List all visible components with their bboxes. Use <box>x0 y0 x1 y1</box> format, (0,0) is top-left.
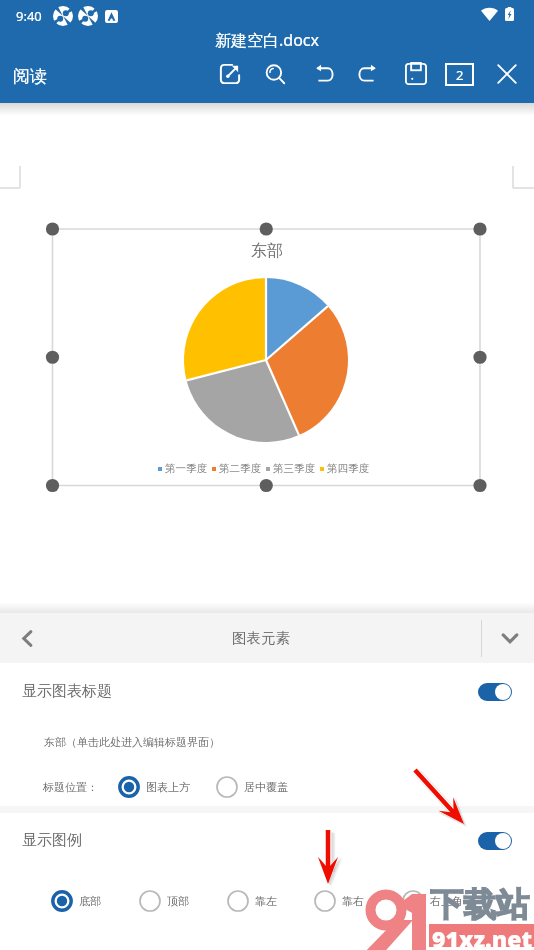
staticText: 底部 <box>79 894 101 908</box>
staticText: 东部 <box>251 241 283 261</box>
button[interactable]: 显示图表标题 <box>0 663 534 720</box>
staticText: 图表元素 <box>232 629 290 647</box>
staticText: 第二季度 <box>219 462 261 475</box>
staticText: 9:40 <box>16 7 42 25</box>
staticText: 下载站 <box>430 884 529 926</box>
staticText: 91xz.net <box>432 923 532 950</box>
button[interactable]: Export <box>209 53 251 95</box>
staticText: 阅读 <box>13 66 47 87</box>
button[interactable]: Close <box>486 53 528 95</box>
button[interactable]: 顶部 <box>137 888 189 914</box>
button[interactable]: Undo <box>304 53 346 95</box>
button[interactable]: 显示图例 <box>0 813 534 868</box>
button[interactable]: 靠右 <box>312 888 364 914</box>
button[interactable]: Toggle 显示图例 <box>478 832 512 850</box>
button[interactable]: Search <box>254 53 296 95</box>
button[interactable]: Redo <box>346 53 388 95</box>
button[interactable]: Page count <box>438 53 480 95</box>
staticText: 东部（单击此处进入编辑标题界面） <box>44 735 220 749</box>
button[interactable]: Toggle 显示图表标题 <box>478 683 512 701</box>
button[interactable]: 图表上方 <box>116 774 190 800</box>
button[interactable]: 居中覆盖 <box>214 774 288 800</box>
button[interactable]: Back <box>6 613 48 663</box>
staticText: 显示图表标题 <box>22 682 112 701</box>
staticText: 居中覆盖 <box>244 780 288 794</box>
button[interactable]: Collapse <box>485 613 534 663</box>
button[interactable]: 阅读 <box>2 55 58 97</box>
staticText: 顶部 <box>167 894 189 908</box>
staticText: 靠左 <box>255 894 277 908</box>
staticText: 新建空白.docx <box>0 29 534 51</box>
staticText: 标题位置： <box>43 780 98 794</box>
staticText: 右上角 <box>430 894 463 908</box>
button[interactable]: Save <box>395 53 437 95</box>
button[interactable]: 底部 <box>49 888 101 914</box>
staticText: 第三季度 <box>273 462 315 475</box>
staticText: 第四季度 <box>327 462 369 475</box>
staticText: 图表上方 <box>146 780 190 794</box>
button[interactable]: 靠左 <box>225 888 277 914</box>
staticText: 2 <box>456 66 464 84</box>
staticText: 靠右 <box>342 894 364 908</box>
staticText: 显示图例 <box>22 831 82 850</box>
button[interactable]: 右上角 <box>400 888 463 914</box>
staticText: 第一季度 <box>165 462 207 475</box>
